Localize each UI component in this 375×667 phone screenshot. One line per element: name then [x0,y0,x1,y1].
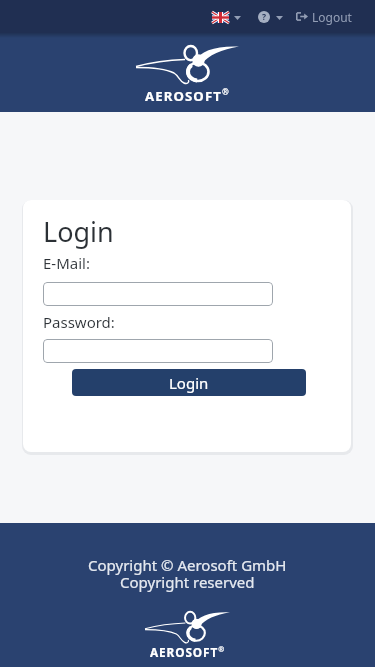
staticText: AEROSOFT® [150,644,226,661]
staticText: Logout [312,9,352,25]
staticText: Password: [43,312,115,332]
button[interactable] [209,8,243,26]
staticText: Login [43,213,114,250]
button[interactable]: Logout [296,0,352,33]
staticText: ? [262,11,267,23]
button[interactable] [43,282,273,306]
button[interactable] [43,339,273,363]
staticText: Copyright © Aerosoft GmbH [88,555,287,575]
staticText: Login [169,373,209,393]
staticText: AEROSOFT® [145,86,230,105]
staticText: E-Mail: [43,253,90,273]
button[interactable]: Login [72,369,306,396]
button[interactable]: ? [256,8,285,26]
staticText: Copyright reserved [120,572,255,592]
